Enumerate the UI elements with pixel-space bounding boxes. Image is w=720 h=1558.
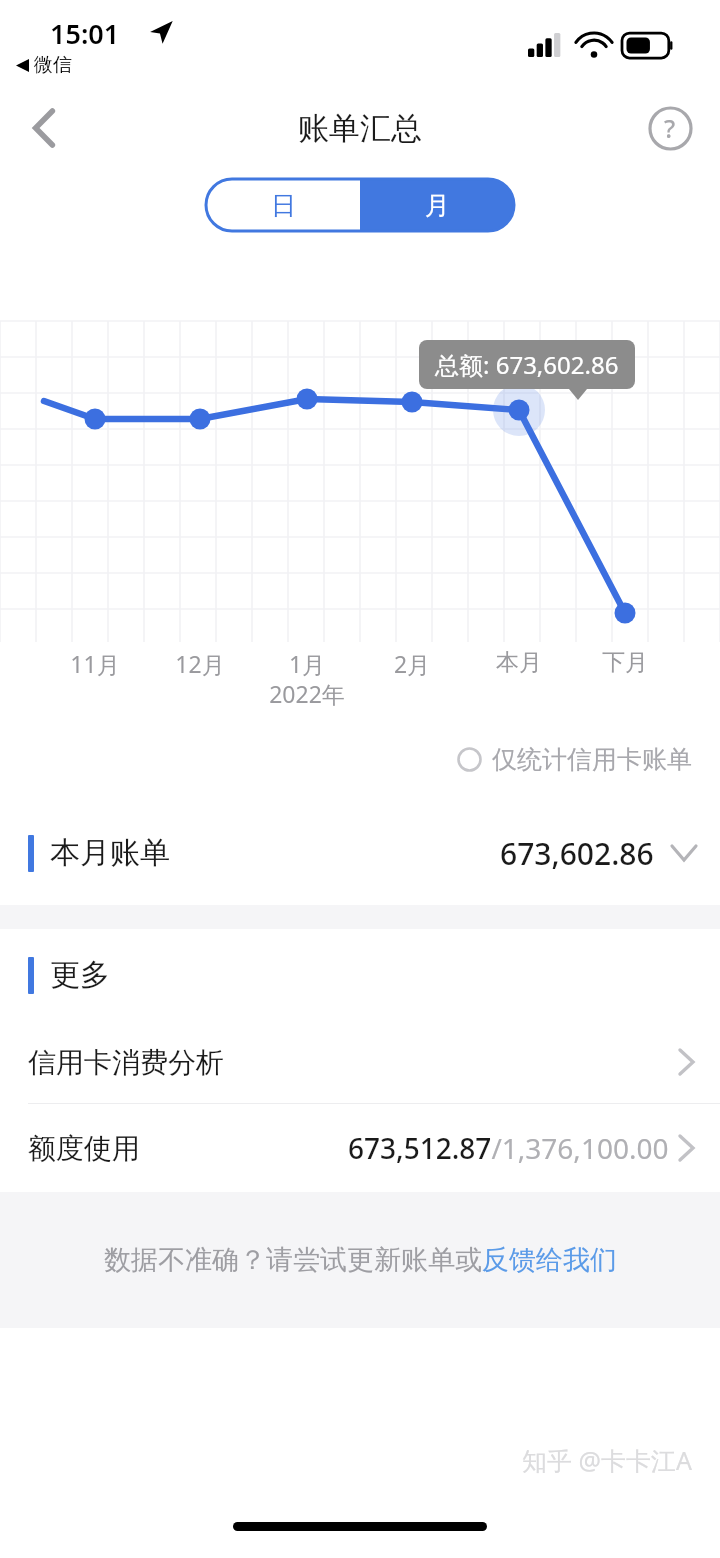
staticText: 信用卡消费分析 bbox=[28, 1045, 224, 1080]
staticText: 月 bbox=[425, 190, 450, 221]
staticText: 账单汇总 bbox=[298, 109, 422, 148]
staticText: 2022年 bbox=[257, 678, 357, 709]
staticText: 微信 bbox=[34, 53, 72, 77]
staticText: 1月 bbox=[271, 648, 343, 679]
staticText: 数据不准确？请尝试更新账单或反馈给我们 bbox=[104, 1243, 617, 1277]
staticText: 12月 bbox=[164, 648, 236, 679]
staticText: 673,512.87/1,376,100.00 bbox=[348, 1129, 669, 1167]
staticText: 673,602.86 bbox=[500, 833, 654, 874]
button[interactable]: Back bbox=[12, 96, 76, 160]
staticText: 更多 bbox=[50, 956, 110, 994]
staticText: 15:01 bbox=[50, 15, 120, 52]
staticText: 下月 bbox=[589, 648, 661, 677]
button[interactable]: 信用卡消费分析 bbox=[0, 1021, 720, 1103]
button[interactable]: 月 bbox=[360, 179, 514, 231]
staticText: 本月 bbox=[483, 648, 555, 677]
staticText: 额度使用 bbox=[28, 1131, 140, 1166]
button[interactable]: 本月账单 bbox=[0, 817, 720, 889]
staticText: 日 bbox=[271, 190, 296, 221]
button[interactable]: Help bbox=[640, 98, 700, 158]
button[interactable]: 日 bbox=[206, 179, 360, 231]
staticText: 知乎 @卡卡江A bbox=[522, 1443, 692, 1477]
staticText: 总额: 673,602.86 bbox=[435, 348, 619, 381]
button[interactable]: 仅统计信用卡账单 bbox=[457, 744, 692, 775]
button[interactable]: 数据不准确？请尝试更新账单或反馈给我们 bbox=[104, 1243, 617, 1277]
staticText: ? bbox=[664, 111, 676, 145]
staticText: 2月 bbox=[376, 648, 448, 679]
button[interactable]: 额度使用 bbox=[0, 1104, 720, 1192]
staticText: 本月账单 bbox=[50, 834, 170, 872]
staticText: 11月 bbox=[59, 648, 131, 679]
staticText: 仅统计信用卡账单 bbox=[492, 744, 692, 775]
